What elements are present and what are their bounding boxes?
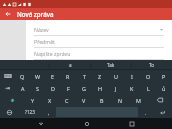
button[interactable]: , [41,106,56,118]
button[interactable]: E [45,70,60,82]
button[interactable]: Shift [0,94,24,106]
button[interactable]: R [60,70,76,82]
staticText: To [149,62,155,68]
staticText: W [35,73,41,80]
staticText: J [115,85,117,92]
staticText: H [98,85,102,92]
staticText: N [118,97,123,104]
button[interactable]: A [15,82,30,94]
staticText: G [82,85,86,92]
button[interactable]: . [138,106,153,118]
staticText: I [131,73,133,80]
staticText: Tak [107,62,115,68]
staticText: Název [34,26,159,33]
staticText: ⌨ [4,73,12,79]
staticText: S [36,85,39,92]
button[interactable]: Q [15,70,30,82]
staticText: Předmět [34,38,164,45]
button[interactable]: N [111,94,129,106]
button[interactable]: Název [34,24,164,36]
staticText: ?123 [25,109,35,115]
button[interactable]: a [50,60,90,69]
staticText: , [48,109,50,116]
staticText: P [162,73,166,80]
staticText: R [66,73,70,80]
staticText: F [67,85,70,92]
staticText: L [147,85,150,92]
staticText: Nová zpráva [17,10,54,18]
button[interactable]: C [58,94,75,106]
staticText: ⇥ [5,85,10,91]
button[interactable]: Enter [153,106,172,118]
staticText: V [82,97,86,104]
staticText: U [114,73,118,80]
button[interactable]: S [30,82,45,94]
button[interactable]: K [124,82,140,94]
staticText: Z [98,73,102,80]
staticText: O [146,73,151,80]
button[interactable]: Z [92,70,108,82]
staticText: D [51,85,55,92]
staticText: Q [20,73,25,80]
staticText: M [136,97,141,104]
staticText: . [145,109,147,116]
button[interactable]: D [45,82,60,94]
button[interactable]: W [30,70,45,82]
button[interactable]: U [108,70,124,82]
staticText: C [65,97,69,104]
button[interactable]: V [75,94,93,106]
staticText: ů [162,85,166,92]
button[interactable]: I [124,70,140,82]
button[interactable]: L [140,82,156,94]
button[interactable]: J [108,82,124,94]
staticText: B [100,97,104,104]
button[interactable]: To [132,60,172,69]
button[interactable]: ⌨ [0,70,15,82]
button[interactable]: Tak [91,60,131,69]
button[interactable]: B [93,94,111,106]
button[interactable]: T [76,70,92,82]
button[interactable]: Home [81,118,92,129]
staticText: a [69,62,72,68]
button[interactable]: Recent apps [126,118,137,129]
button[interactable]: ů [156,82,172,94]
button[interactable]: Back [35,118,46,129]
button[interactable]: F [60,82,76,94]
staticText: Napište zprávu [34,50,164,57]
staticText: A [21,85,25,92]
staticText: K [130,85,134,92]
button[interactable]: G [76,82,92,94]
button[interactable]: ?123 [19,106,41,118]
button[interactable]: P [156,70,172,82]
button[interactable]: M [129,94,147,106]
button[interactable]: Change language [0,106,19,118]
button[interactable]: H [92,82,108,94]
staticText: X [48,97,52,104]
staticText: T [83,73,86,80]
button[interactable]: Předmět [34,36,164,48]
button[interactable]: ⇥ [0,82,15,94]
button[interactable]: Backspace [147,94,172,106]
button[interactable]: O [140,70,156,82]
button[interactable]: Back [3,9,13,19]
staticText: E [51,73,54,80]
button[interactable]: Y [24,94,41,106]
button[interactable]: X [41,94,58,106]
staticText: Y [31,97,35,104]
button[interactable]: Napište zprávu [34,48,164,60]
